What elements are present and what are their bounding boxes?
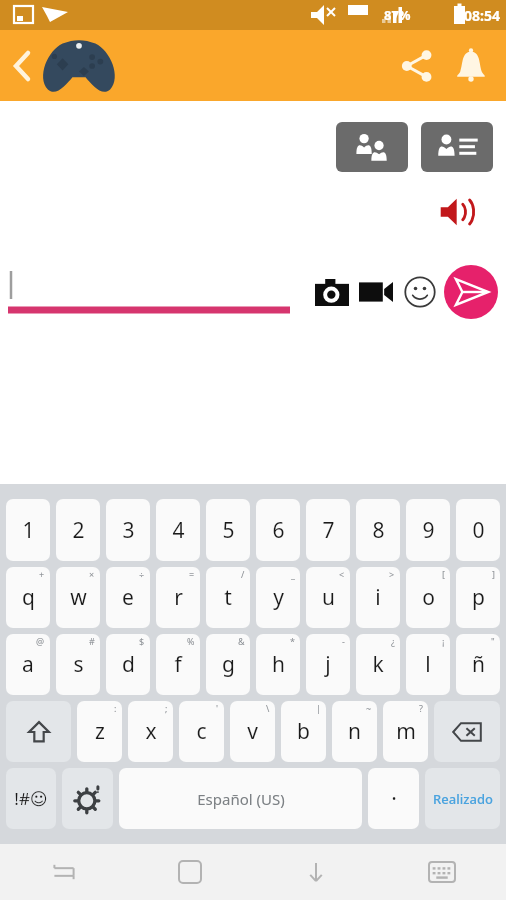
staticText: 5 (222, 516, 235, 545)
staticText: & (238, 635, 245, 647)
button[interactable]: Sound (433, 189, 479, 235)
button[interactable]: Back (0, 44, 44, 88)
button[interactable]: l (406, 634, 450, 695)
staticText: f (174, 650, 182, 679)
button[interactable]: a (6, 634, 50, 695)
button[interactable]: Camera (310, 270, 354, 314)
staticText: | (316, 702, 321, 714)
button[interactable]: · (368, 768, 419, 829)
staticText: ; (165, 702, 168, 714)
button[interactable]: 7 (306, 499, 350, 561)
staticText: p (472, 583, 485, 612)
button[interactable]: o (406, 567, 450, 628)
staticText: z (95, 717, 105, 746)
button[interactable]: z (77, 701, 122, 762)
button[interactable]: c (179, 701, 224, 762)
button[interactable]: d (106, 634, 150, 695)
button[interactable]: x (128, 701, 173, 762)
staticText: u (322, 583, 335, 612)
staticText: o (422, 583, 435, 612)
staticText: ¡ (442, 635, 445, 647)
staticText: + (39, 568, 45, 580)
button[interactable]: y (256, 567, 300, 628)
staticText: r (174, 583, 183, 612)
button[interactable] (434, 701, 500, 762)
staticText: 1 (22, 516, 35, 545)
button[interactable]: t (206, 567, 250, 628)
staticText: 6 (272, 516, 285, 545)
button[interactable]: p (456, 567, 500, 628)
button[interactable]: Home (166, 848, 214, 896)
staticText: !#☺ (14, 787, 48, 810)
button[interactable]: s (56, 634, 100, 695)
staticText: # (89, 635, 95, 647)
button[interactable]: 2 (56, 499, 100, 561)
button[interactable]: m (383, 701, 428, 762)
button[interactable] (6, 701, 71, 762)
button[interactable]: 5 (206, 499, 250, 561)
button[interactable]: Participants (336, 122, 408, 172)
staticText: h (272, 650, 285, 679)
button[interactable]: i (356, 567, 400, 628)
staticText: * (290, 635, 295, 647)
button[interactable]: r (156, 567, 200, 628)
staticText: ~ (366, 702, 372, 714)
staticText: a (22, 650, 34, 679)
staticText: _ (291, 568, 295, 580)
button[interactable]: Keyboard (418, 848, 466, 896)
button[interactable]: k (356, 634, 400, 695)
button[interactable]: q (6, 567, 50, 628)
staticText: e (122, 583, 134, 612)
button[interactable]: g (206, 634, 250, 695)
button[interactable]: 1 (6, 499, 50, 561)
button[interactable]: 4 (156, 499, 200, 561)
staticText: 0 (472, 516, 485, 545)
staticText: x (145, 717, 157, 746)
button[interactable]: !#☺ (6, 768, 56, 829)
button[interactable]: 9 (406, 499, 450, 561)
button[interactable]: 0 (456, 499, 500, 561)
button[interactable]: n (332, 701, 377, 762)
button[interactable]: Realizado (425, 768, 500, 829)
staticText: < (339, 568, 345, 580)
button[interactable] (62, 768, 113, 829)
button[interactable]: 3 (106, 499, 150, 561)
button[interactable]: v (230, 701, 275, 762)
button[interactable]: Recents (40, 848, 88, 896)
button[interactable]: Share (390, 39, 444, 93)
staticText: × (89, 568, 95, 580)
staticText: g (222, 650, 235, 679)
button[interactable]: Video (354, 270, 398, 314)
button[interactable]: b (281, 701, 326, 762)
button[interactable]: w (56, 567, 100, 628)
staticText: 2 (72, 516, 85, 545)
button[interactable]: Hide keyboard (292, 848, 340, 896)
button[interactable]: Notifications (444, 39, 498, 93)
staticText: b (297, 717, 310, 746)
staticText: $ (139, 635, 145, 647)
staticText: y (273, 583, 284, 612)
button[interactable] (8, 261, 290, 323)
staticText: w (70, 583, 87, 612)
button[interactable]: Send (442, 263, 500, 321)
button[interactable]: u (306, 567, 350, 628)
staticText: 7 (322, 516, 335, 545)
button[interactable]: Emoji (398, 270, 442, 314)
staticText: q (22, 583, 35, 612)
staticText: 3 (122, 516, 135, 545)
button[interactable]: j (306, 634, 350, 695)
button[interactable]: h (256, 634, 300, 695)
button[interactable]: e (106, 567, 150, 628)
staticText: c (196, 717, 207, 746)
button[interactable]: f (156, 634, 200, 695)
button[interactable]: 8 (356, 499, 400, 561)
button[interactable]: ñ (456, 634, 500, 695)
staticText: n (348, 717, 361, 746)
staticText: · (391, 784, 397, 813)
button[interactable]: Contact card (421, 122, 493, 172)
staticText: > (389, 568, 395, 580)
button[interactable]: Español (US) (119, 768, 362, 829)
staticText: ñ (472, 650, 485, 679)
button[interactable]: 6 (256, 499, 300, 561)
staticText: ? (419, 702, 423, 714)
